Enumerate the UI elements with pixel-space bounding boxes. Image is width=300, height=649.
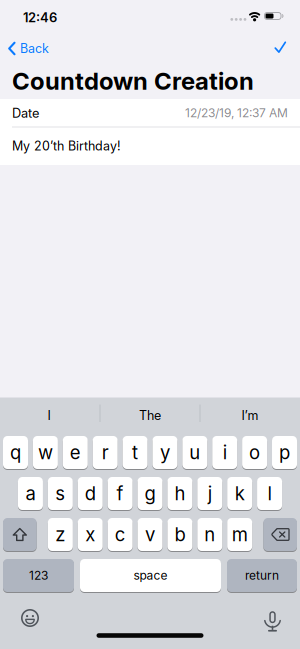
staticText: y (160, 441, 170, 464)
staticText: I’m (241, 408, 258, 423)
staticText: r (102, 441, 109, 464)
button[interactable]: My 20’th Birthday! (0, 127, 300, 165)
button[interactable]: x (78, 518, 103, 551)
staticText: s (55, 482, 65, 505)
button[interactable]: q (3, 436, 28, 469)
button[interactable]: l (257, 477, 282, 510)
staticText: n (204, 523, 215, 546)
button[interactable]: k (227, 477, 252, 510)
button[interactable]: Dictate (258, 601, 287, 633)
staticText: f (117, 482, 124, 505)
button[interactable]: d (78, 477, 103, 510)
staticText: l (268, 482, 272, 505)
staticText: h (174, 482, 185, 505)
button[interactable]: b (167, 518, 192, 551)
button[interactable]: o (242, 436, 267, 469)
button[interactable]: Back (8, 39, 49, 57)
staticText: 12/23/19, 12:37 AM (185, 106, 288, 120)
staticText: Date (12, 105, 39, 121)
staticText: a (25, 482, 35, 505)
staticText: w (38, 441, 53, 464)
button[interactable]: Delete (263, 518, 297, 551)
button[interactable]: Date (0, 99, 300, 127)
button[interactable]: Shift (3, 518, 37, 551)
button[interactable]: a (18, 477, 43, 510)
staticText: i (223, 441, 227, 464)
button[interactable]: return (227, 559, 297, 592)
staticText: e (70, 441, 81, 464)
staticText: 123 (29, 568, 48, 583)
button[interactable]: n (197, 518, 222, 551)
button[interactable]: I (0, 400, 98, 431)
staticText: b (174, 523, 185, 546)
button[interactable]: Done (268, 37, 292, 57)
button[interactable]: u (182, 436, 207, 469)
staticText: k (235, 482, 245, 505)
staticText: t (132, 441, 138, 464)
button[interactable]: space (80, 559, 221, 592)
button[interactable]: t (123, 436, 148, 469)
staticText: d (85, 482, 96, 505)
button[interactable]: c (108, 518, 133, 551)
button[interactable]: 123 (3, 559, 74, 592)
staticText: I (47, 408, 50, 423)
button[interactable]: I’m (201, 400, 299, 431)
staticText: Back (20, 41, 49, 56)
staticText: m (232, 523, 248, 546)
button[interactable]: j (197, 477, 222, 510)
button[interactable]: v (137, 518, 162, 551)
staticText: g (144, 482, 155, 505)
button[interactable]: The (101, 400, 199, 431)
staticText: u (189, 441, 200, 464)
staticText: v (145, 523, 155, 546)
button[interactable]: z (48, 518, 73, 551)
button[interactable]: e (63, 436, 88, 469)
staticText: 12:46 (23, 10, 57, 25)
button[interactable]: r (93, 436, 118, 469)
staticText: My 20’th Birthday! (12, 138, 121, 153)
staticText: c (115, 523, 126, 546)
staticText: Countdown Creation (12, 66, 254, 95)
button[interactable]: s (48, 477, 73, 510)
button[interactable]: f (108, 477, 133, 510)
staticText: z (55, 523, 65, 546)
staticText: space (133, 568, 167, 583)
button[interactable]: g (137, 477, 162, 510)
staticText: q (10, 441, 21, 464)
staticText: j (208, 482, 212, 505)
button[interactable]: i (212, 436, 237, 469)
button[interactable]: Emoji (15, 603, 45, 633)
button[interactable]: m (227, 518, 252, 551)
staticText: x (85, 523, 95, 546)
button[interactable]: p (272, 436, 297, 469)
staticText: return (245, 568, 279, 583)
button[interactable]: w (33, 436, 58, 469)
button[interactable]: y (152, 436, 177, 469)
staticText: p (279, 441, 290, 464)
button[interactable]: h (167, 477, 192, 510)
staticText: o (249, 441, 260, 464)
staticText: The (139, 408, 161, 423)
